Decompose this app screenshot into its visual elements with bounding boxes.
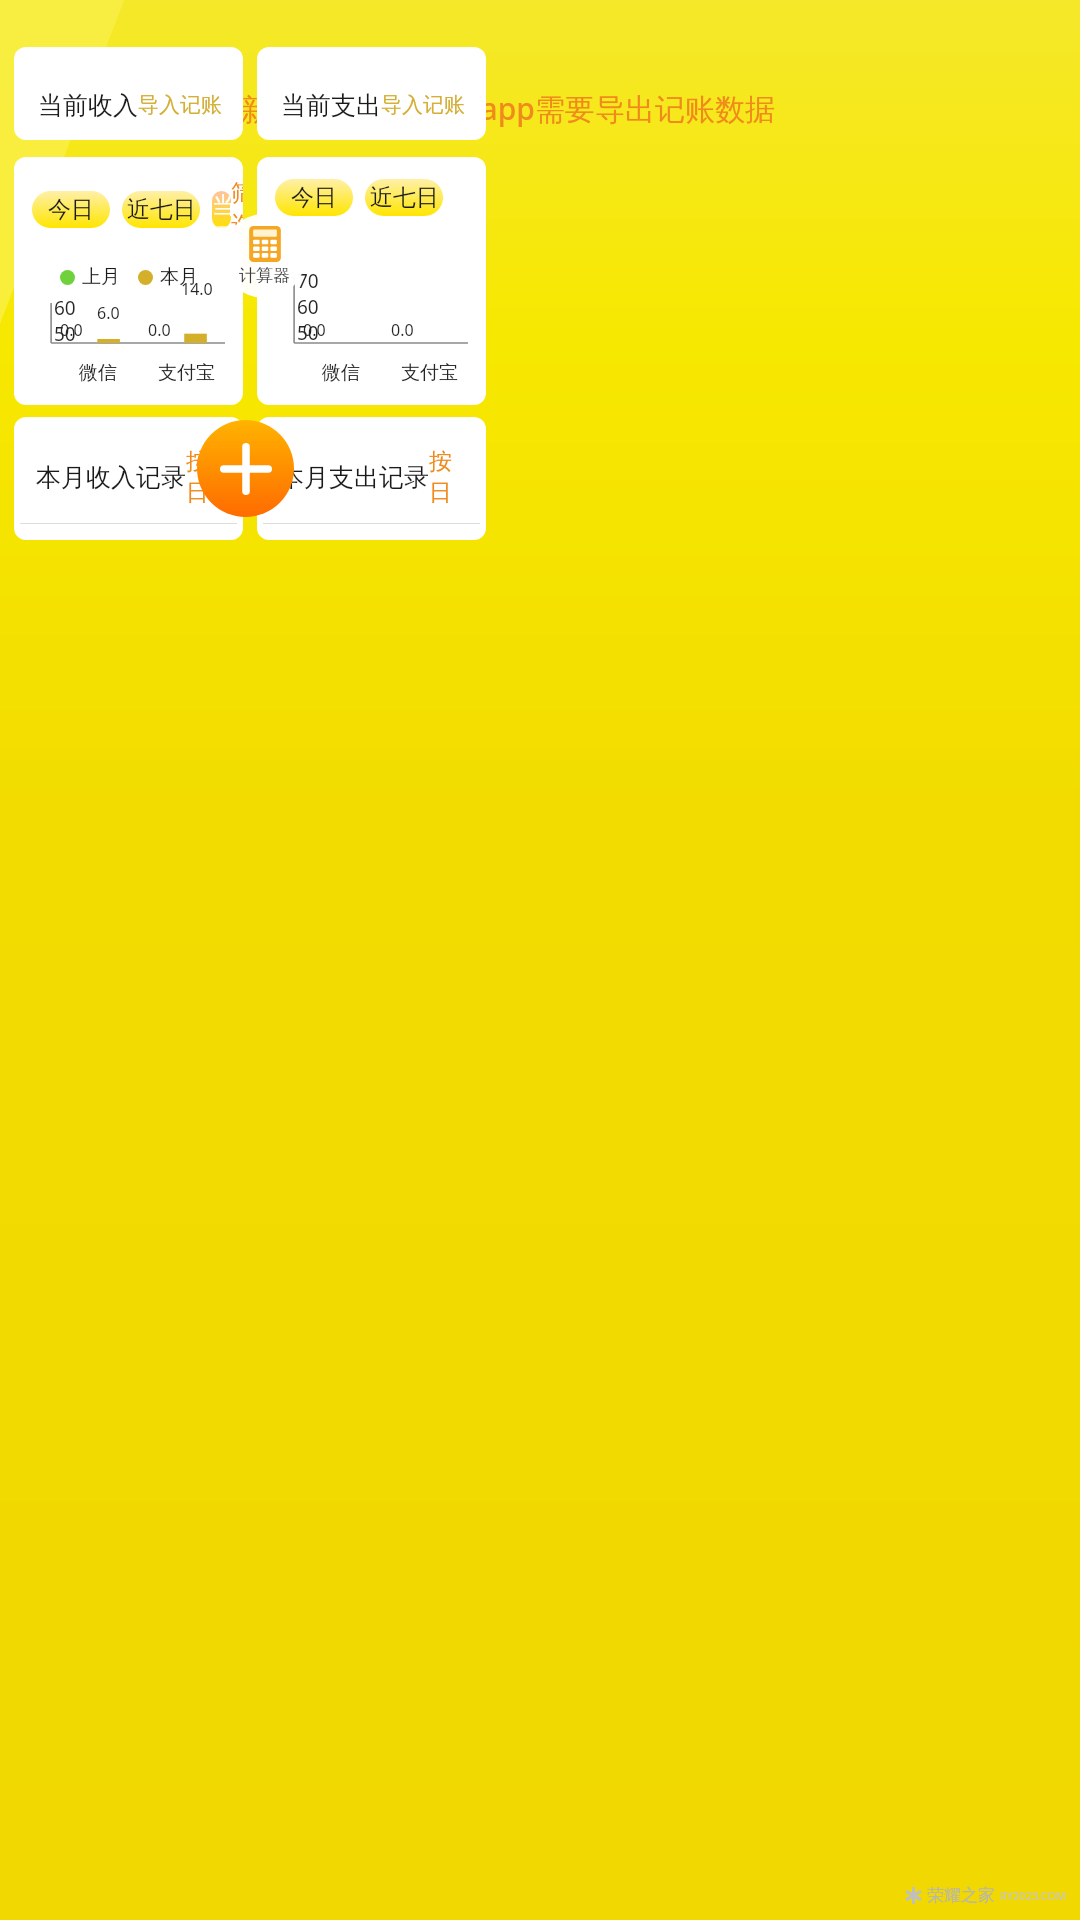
button[interactable]: 今日 bbox=[14, 157, 243, 405]
button[interactable]: 导入记账 bbox=[381, 92, 465, 118]
staticText: 近七日 bbox=[370, 183, 439, 212]
staticText: 今日 bbox=[291, 183, 337, 212]
button[interactable]: 今日 bbox=[275, 179, 353, 216]
staticText: 本月收入记录 bbox=[36, 462, 186, 493]
button[interactable]: 今日 bbox=[32, 191, 110, 228]
staticText: 当前支出 bbox=[281, 90, 381, 121]
button[interactable]: 计算器 bbox=[222, 214, 306, 298]
button[interactable]: 当月 bbox=[212, 191, 231, 228]
staticText: 0.0 bbox=[148, 319, 171, 341]
staticText: 今日 bbox=[48, 195, 94, 224]
button[interactable]: 按日 bbox=[186, 447, 223, 507]
staticText: 本月支出记录 bbox=[279, 462, 429, 493]
staticText: 60 bbox=[54, 295, 76, 321]
staticText: 50 bbox=[297, 320, 319, 346]
staticText: 60 bbox=[297, 294, 319, 320]
staticText: 0.0 bbox=[391, 319, 414, 341]
button[interactable]: 添加记账 bbox=[197, 420, 294, 517]
button[interactable]: 本月收入记录 bbox=[14, 417, 243, 540]
button[interactable]: 当前收入 bbox=[14, 47, 243, 140]
staticText: RY2023.COM bbox=[1000, 1888, 1066, 1903]
staticText: 上月 bbox=[82, 265, 120, 289]
staticText: 0.0 bbox=[60, 319, 83, 341]
staticText: 当前收入 bbox=[38, 90, 138, 121]
button[interactable]: 导入记账 bbox=[138, 92, 222, 118]
button[interactable]: 近七日 bbox=[122, 191, 200, 228]
staticText: 0.0 bbox=[303, 319, 326, 341]
staticText: 支付宝 bbox=[158, 361, 215, 385]
button[interactable]: 今日 bbox=[257, 157, 486, 405]
button[interactable]: 本月支出记录 bbox=[257, 417, 486, 540]
button[interactable]: 近七日 bbox=[365, 179, 443, 216]
staticText: 近七日 bbox=[127, 195, 196, 224]
staticText: 当月 bbox=[212, 191, 231, 228]
staticText: 微信 bbox=[79, 361, 117, 385]
staticText: 本月 bbox=[160, 265, 198, 289]
button[interactable]: 按日 bbox=[429, 447, 466, 507]
staticText: 支付宝 bbox=[401, 361, 458, 385]
staticText: 荣耀之家 bbox=[927, 1885, 995, 1906]
staticText: 计算器 bbox=[239, 265, 290, 286]
staticText: 微信 bbox=[322, 361, 360, 385]
staticText: 6.0 bbox=[97, 302, 120, 324]
staticText: 50 bbox=[54, 321, 76, 347]
staticText: 70 bbox=[297, 268, 319, 294]
button[interactable]: 当前支出 bbox=[257, 47, 486, 140]
staticText: 请谨慎操作！ 重新或替换手机安装app需要导出记账数据 bbox=[15, 88, 775, 129]
staticText: 14.0 bbox=[181, 278, 213, 300]
